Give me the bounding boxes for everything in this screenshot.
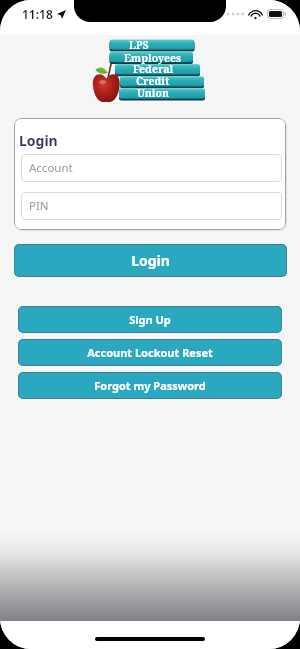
staticText: Credit bbox=[136, 74, 170, 88]
staticText: Federal bbox=[133, 62, 174, 76]
staticText: Employees bbox=[124, 51, 182, 65]
staticText: Account bbox=[29, 160, 73, 176]
staticText: PIN bbox=[29, 198, 49, 214]
button[interactable]: Account Lockout Reset bbox=[18, 339, 282, 366]
button[interactable]: Account bbox=[21, 154, 282, 182]
staticText: Union bbox=[137, 86, 169, 100]
staticText: Login bbox=[19, 131, 58, 150]
staticText: LPS bbox=[129, 38, 149, 52]
staticText: 11:18 bbox=[22, 6, 53, 22]
button[interactable]: Login bbox=[14, 244, 287, 277]
button[interactable]: PIN bbox=[21, 192, 282, 220]
staticText: Account Lockout Reset bbox=[87, 345, 213, 360]
staticText: Login bbox=[131, 251, 170, 270]
staticText: Sign Up bbox=[129, 312, 171, 327]
staticText: Forgot my Password bbox=[94, 378, 206, 393]
button[interactable]: Forgot my Password bbox=[18, 372, 282, 399]
button[interactable]: Sign Up bbox=[18, 306, 282, 333]
